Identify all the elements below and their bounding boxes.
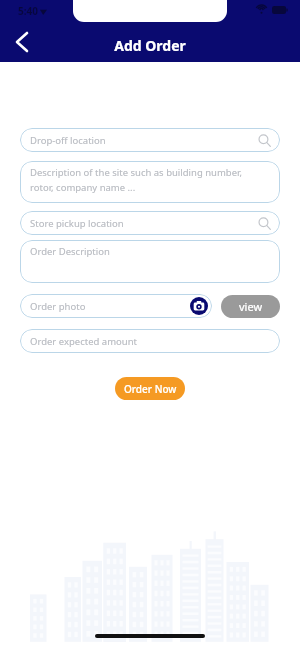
staticText: rotor, company name ...: [30, 181, 136, 194]
button[interactable]: Back: [4, 24, 40, 60]
staticText: Order expected amount: [30, 335, 137, 348]
button[interactable]: Store pickup location: [20, 211, 280, 235]
staticText: Add Order: [114, 36, 186, 55]
staticText: Order Description: [30, 245, 110, 258]
staticText: Order photo: [30, 300, 86, 313]
button[interactable]: Order Description: [20, 240, 280, 283]
staticText: Drop-off location: [30, 134, 106, 147]
button[interactable]: Order photo: [20, 294, 212, 318]
staticText: Description of the site such as building…: [30, 166, 243, 179]
button[interactable]: view: [221, 295, 280, 318]
button[interactable]: Drop-off location: [20, 128, 280, 152]
button[interactable]: Search drop-off location: [254, 130, 274, 150]
button[interactable]: Order Now: [115, 377, 185, 400]
button[interactable]: Order expected amount: [20, 329, 280, 353]
staticText: Store pickup location: [30, 217, 124, 230]
button[interactable]: Search store pickup location: [254, 213, 274, 233]
button[interactable]: Take photo: [190, 297, 208, 315]
staticText: Order Now: [124, 382, 177, 396]
staticText: 5:40: [18, 4, 38, 18]
staticText: view: [239, 299, 263, 314]
button[interactable]: Description of the site such as building…: [20, 161, 280, 203]
